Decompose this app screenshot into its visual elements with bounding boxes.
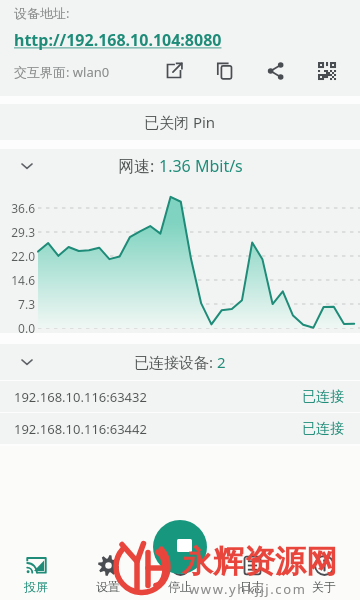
button[interactable]: QR code: [301, 53, 352, 89]
staticText: 日志: [240, 579, 264, 594]
staticText: 已连接设备:: [134, 352, 217, 372]
button[interactable]: 停止: [144, 548, 216, 600]
button[interactable]: 投屏: [0, 548, 72, 600]
staticText: 14.6: [0, 272, 35, 288]
button[interactable]: Collapse device list: [0, 344, 360, 380]
button[interactable]: http://192.168.10.104:8080: [14, 29, 222, 51]
staticText: 关于: [312, 579, 336, 594]
staticText: 7.3: [0, 296, 35, 312]
staticText: 2: [217, 352, 226, 372]
staticText: 投屏: [24, 579, 48, 594]
staticText: 设备地址:: [14, 4, 70, 22]
staticText: 停止: [168, 579, 192, 594]
button[interactable]: 已关闭 Pin: [0, 104, 360, 140]
staticText: 永辉资源网: [182, 542, 337, 581]
button[interactable]: 日志: [216, 548, 288, 600]
staticText: 已连接: [302, 388, 344, 406]
staticText: www.yhkjjj.com: [189, 580, 307, 598]
button[interactable]: Copy address: [199, 53, 250, 89]
button[interactable]: 关于: [288, 548, 360, 600]
staticText: 1.36 Mbit/s: [159, 155, 243, 177]
button[interactable]: 192.168.10.116:63442: [0, 413, 360, 444]
staticText: 192.168.10.116:63442: [14, 420, 147, 438]
staticText: 设置: [96, 579, 120, 594]
staticText: 29.3: [0, 224, 35, 240]
other: Collapse speed chart: [19, 158, 35, 174]
staticText: 36.6: [0, 200, 35, 216]
staticText: 已关闭 Pin: [144, 112, 216, 132]
staticText: 192.168.10.116:63432: [14, 388, 147, 406]
button[interactable]: Share: [250, 53, 301, 89]
button[interactable]: 192.168.10.116:63432: [0, 381, 360, 412]
button[interactable]: 设置: [72, 548, 144, 600]
staticText: 0.0: [0, 320, 35, 336]
staticText: 22.0: [0, 248, 35, 264]
staticText: 网速:: [118, 155, 159, 177]
staticText: 已连接: [302, 420, 344, 438]
button[interactable]: Collapse speed chart: [0, 149, 360, 182]
button[interactable]: Open in browser: [148, 53, 199, 89]
staticText: 交互界面: wlan0: [14, 63, 110, 81]
other: Collapse device list: [19, 354, 35, 370]
